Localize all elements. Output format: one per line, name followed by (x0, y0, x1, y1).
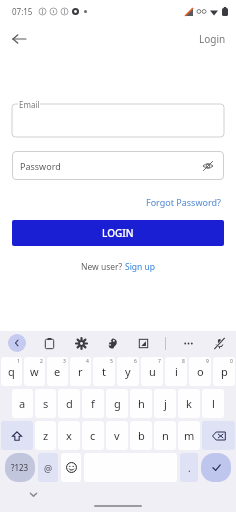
button[interactable]: g (106, 389, 128, 418)
staticText: p (221, 364, 228, 379)
button[interactable]: f (82, 389, 104, 418)
staticText: 1 (17, 358, 20, 365)
staticText: c (90, 428, 96, 443)
button[interactable]: Resize (134, 334, 152, 352)
staticText: j (164, 396, 167, 411)
staticText: g (114, 396, 121, 411)
staticText: n (162, 428, 169, 443)
staticText: 7 (158, 358, 161, 365)
staticText: s (43, 396, 49, 411)
staticText: y (125, 364, 131, 379)
button[interactable]: LOGIN (12, 220, 224, 246)
button[interactable]: r (70, 357, 91, 386)
staticText: m (184, 428, 195, 443)
button[interactable]: o (189, 357, 211, 386)
staticText: a (19, 396, 26, 411)
button[interactable]: @ (38, 453, 58, 482)
staticText: z (43, 428, 49, 443)
staticText: Sign up (125, 261, 156, 273)
button[interactable]: Login (199, 32, 226, 46)
button[interactable]: Sign up (125, 261, 156, 273)
button[interactable]: i (165, 357, 187, 386)
button[interactable]: k (178, 389, 200, 418)
staticText: w (30, 364, 39, 379)
staticText: 5 (110, 358, 113, 365)
staticText: t (102, 364, 106, 379)
button[interactable]: Clipboard (40, 334, 58, 352)
button[interactable]: d (58, 389, 80, 418)
button[interactable]: y (117, 357, 139, 386)
button[interactable]: c (82, 421, 104, 450)
button[interactable]: t (93, 357, 115, 386)
staticText: 07:15 (12, 6, 33, 17)
staticText: q (8, 364, 15, 379)
button[interactable]: x (58, 421, 80, 450)
staticText: u (149, 364, 156, 379)
button[interactable]: l (202, 389, 224, 418)
button[interactable]: a (12, 389, 33, 418)
staticText: 3 (63, 358, 66, 365)
button[interactable]: ?123 (5, 453, 35, 482)
staticText: ?123 (11, 462, 29, 473)
button[interactable]: q (1, 357, 22, 386)
staticText: k (186, 396, 192, 411)
button[interactable]: z (35, 421, 56, 450)
button[interactable]: u (141, 357, 163, 386)
staticText: o (197, 364, 204, 379)
staticText: l (212, 396, 215, 411)
staticText: x (66, 428, 72, 443)
button[interactable]: Backspace (202, 421, 235, 450)
staticText: Login (199, 32, 226, 46)
staticText: e (54, 364, 61, 379)
staticText: 6 (134, 358, 137, 365)
button[interactable]: j (154, 389, 176, 418)
button[interactable]: Show password (200, 158, 216, 174)
staticText: b (138, 428, 145, 443)
button[interactable]: s (35, 389, 56, 418)
button[interactable]: Back (5, 25, 33, 53)
button[interactable]: Emoji (61, 453, 81, 482)
staticText: d (66, 396, 73, 411)
staticText: 2 (40, 358, 43, 365)
button[interactable]: m (178, 421, 200, 450)
button[interactable]: w (24, 357, 45, 386)
button[interactable]: Settings (72, 334, 90, 352)
button[interactable]: . (180, 453, 198, 482)
button[interactable]: h (130, 389, 152, 418)
staticText: f (91, 396, 95, 411)
button[interactable]: More options (179, 334, 197, 352)
button[interactable]: Forgot Password? (144, 194, 223, 210)
button[interactable]: Enter (201, 453, 231, 482)
staticText: 9 (206, 358, 209, 365)
button[interactable]: Hide keyboard (26, 487, 40, 501)
staticText: h (138, 396, 145, 411)
staticText: 8 (182, 358, 185, 365)
button[interactable]: p (213, 357, 235, 386)
button[interactable]: b (130, 421, 152, 450)
button[interactable]: Shift (1, 421, 33, 450)
staticText: . (188, 461, 191, 475)
button[interactable]: v (106, 421, 128, 450)
staticText: Forgot Password? (146, 196, 221, 208)
button[interactable]: e (47, 357, 68, 386)
staticText: Password (20, 160, 61, 172)
button[interactable]: Password (12, 151, 224, 180)
button[interactable]: n (154, 421, 176, 450)
staticText: 4 (86, 358, 89, 365)
staticText: LOGIN (102, 226, 134, 240)
button[interactable]: Themes (103, 334, 121, 352)
staticText: Email (19, 99, 40, 110)
button[interactable]: Previous (8, 334, 26, 352)
staticText: v (114, 428, 120, 443)
staticText: @ (44, 462, 53, 474)
button[interactable]: Voice input off (210, 334, 228, 352)
staticText: New user? (81, 261, 125, 273)
staticText: i (175, 364, 178, 379)
button[interactable]: Email (12, 104, 224, 137)
staticText: 0 (230, 358, 233, 365)
staticText: r (78, 364, 83, 379)
